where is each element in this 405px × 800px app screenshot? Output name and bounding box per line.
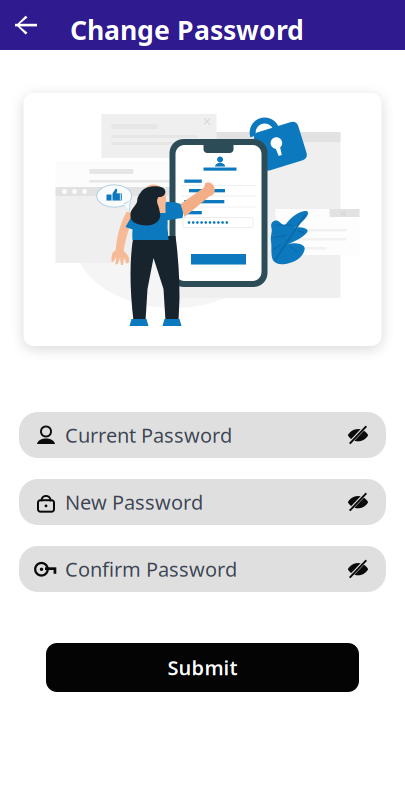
staticText: Confirm Password [65, 556, 237, 582]
staticText: Current Password [65, 422, 232, 448]
button[interactable]: Back [0, 0, 52, 50]
button[interactable]: New Password [19, 479, 386, 525]
staticText: Change Password [70, 12, 304, 47]
button[interactable]: Confirm Password [19, 546, 386, 592]
button[interactable]: Submit [46, 643, 359, 692]
button[interactable]: Current Password [19, 412, 386, 458]
staticText: New Password [65, 489, 203, 515]
staticText: Submit [167, 654, 237, 681]
